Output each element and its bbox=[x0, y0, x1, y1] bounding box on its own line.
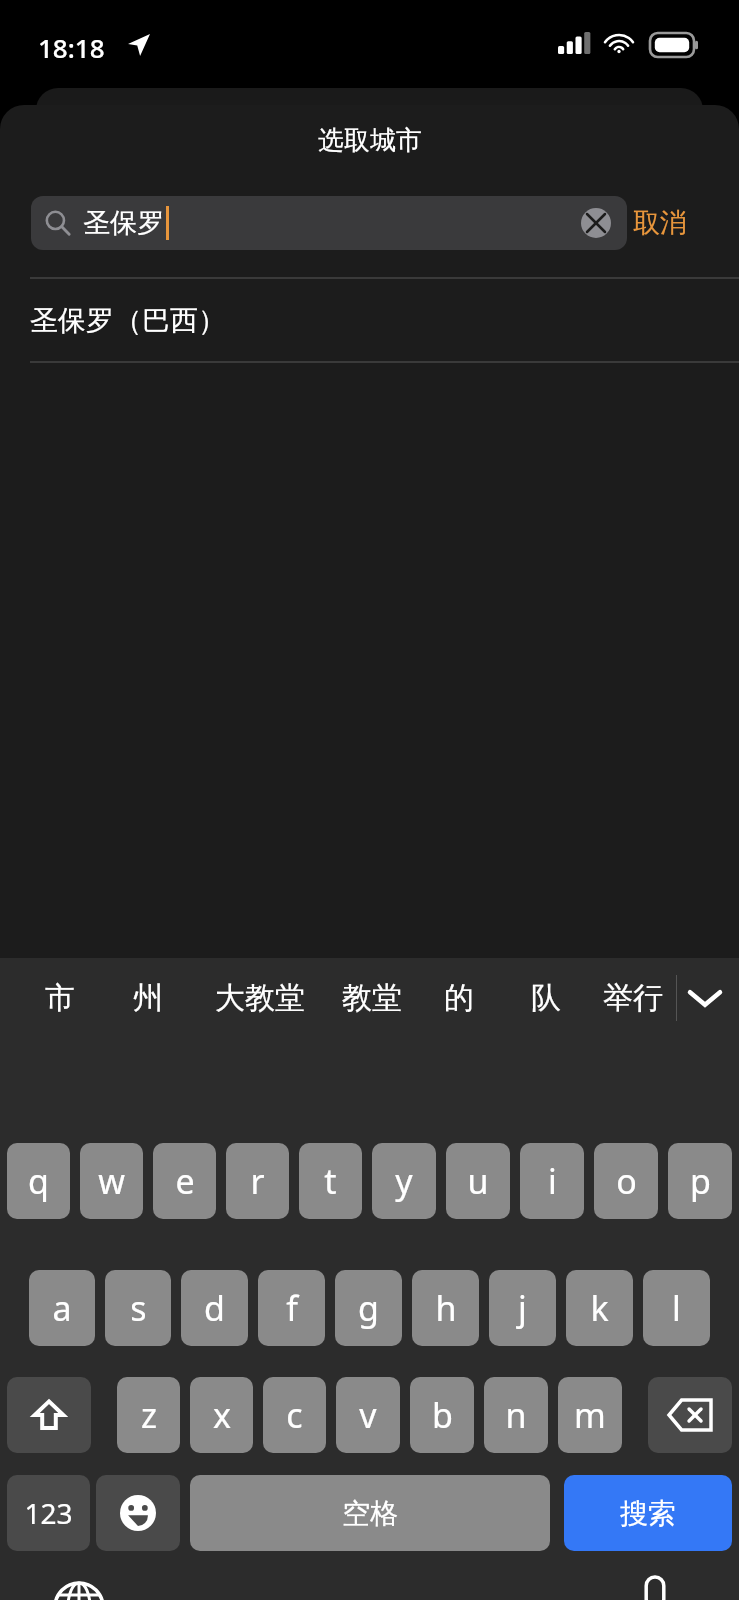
button[interactable]: r bbox=[226, 1143, 289, 1219]
button[interactable]: k bbox=[566, 1270, 633, 1346]
button[interactable]: 举行 bbox=[589, 958, 676, 1038]
button[interactable]: c bbox=[263, 1377, 326, 1453]
button[interactable]: g bbox=[335, 1270, 402, 1346]
staticText: s bbox=[130, 1285, 147, 1331]
button[interactable]: f bbox=[258, 1270, 325, 1346]
staticText: g bbox=[358, 1285, 379, 1331]
staticText: 取消 bbox=[633, 206, 687, 240]
staticText: b bbox=[432, 1392, 453, 1438]
button[interactable]: t bbox=[299, 1143, 362, 1219]
button[interactable]: a bbox=[29, 1270, 95, 1346]
staticText: 圣保罗（巴西） bbox=[30, 303, 226, 338]
staticText: 搜索 bbox=[620, 1496, 676, 1531]
button[interactable]: 教堂 bbox=[328, 958, 415, 1038]
staticText: e bbox=[175, 1158, 195, 1204]
staticText: h bbox=[435, 1285, 457, 1331]
staticText: z bbox=[141, 1392, 157, 1438]
button[interactable]: v bbox=[336, 1377, 400, 1453]
button[interactable]: Emoji bbox=[96, 1475, 180, 1551]
button[interactable]: 搜索 bbox=[564, 1475, 732, 1551]
button[interactable]: s bbox=[105, 1270, 171, 1346]
button[interactable]: e bbox=[153, 1143, 216, 1219]
button[interactable]: m bbox=[558, 1377, 622, 1453]
staticText: l bbox=[672, 1285, 681, 1331]
staticText: v bbox=[359, 1392, 377, 1438]
staticText: 州 bbox=[133, 979, 163, 1017]
button[interactable]: l bbox=[643, 1270, 710, 1346]
button[interactable]: y bbox=[372, 1143, 436, 1219]
staticText: x bbox=[213, 1392, 231, 1438]
staticText: 的 bbox=[444, 979, 474, 1017]
button[interactable]: x bbox=[190, 1377, 253, 1453]
button[interactable]: z bbox=[117, 1377, 180, 1453]
staticText: w bbox=[98, 1158, 125, 1204]
staticText: 举行 bbox=[603, 979, 663, 1017]
staticText: y bbox=[395, 1158, 413, 1204]
button[interactable]: Clear text bbox=[579, 206, 613, 240]
button[interactable]: b bbox=[410, 1377, 474, 1453]
button[interactable]: u bbox=[446, 1143, 510, 1219]
staticText: c bbox=[286, 1392, 303, 1438]
button[interactable]: q bbox=[7, 1143, 70, 1219]
staticText: f bbox=[286, 1285, 298, 1331]
button[interactable]: d bbox=[181, 1270, 248, 1346]
button[interactable]: Dictation bbox=[620, 1570, 690, 1600]
button[interactable]: j bbox=[489, 1270, 556, 1346]
staticText: k bbox=[590, 1285, 609, 1331]
staticText: a bbox=[52, 1285, 72, 1331]
staticText: i bbox=[548, 1158, 557, 1204]
staticText: 123 bbox=[24, 1494, 73, 1532]
button[interactable]: 取消 bbox=[633, 196, 687, 250]
staticText: 大教堂 bbox=[215, 979, 305, 1017]
staticText: 选取城市 bbox=[318, 124, 422, 157]
staticText: 18:18 bbox=[38, 30, 105, 65]
button[interactable]: 圣保罗 bbox=[31, 196, 627, 250]
staticText: 队 bbox=[531, 979, 561, 1017]
button[interactable]: i bbox=[520, 1143, 584, 1219]
staticText: t bbox=[324, 1158, 337, 1204]
button[interactable]: o bbox=[594, 1143, 658, 1219]
button[interactable]: 123 bbox=[7, 1475, 90, 1551]
staticText: p bbox=[690, 1158, 711, 1204]
button[interactable]: 空格 bbox=[190, 1475, 550, 1551]
staticText: m bbox=[574, 1392, 606, 1438]
button[interactable]: Expand candidates bbox=[677, 958, 733, 1038]
staticText: d bbox=[204, 1285, 225, 1331]
button[interactable]: Shift bbox=[7, 1377, 91, 1453]
staticText: o bbox=[616, 1158, 637, 1204]
button[interactable]: 圣保罗（巴西） bbox=[0, 279, 739, 361]
button[interactable]: w bbox=[80, 1143, 143, 1219]
button[interactable]: 大教堂 bbox=[192, 958, 328, 1038]
staticText: j bbox=[518, 1285, 527, 1331]
button[interactable]: p bbox=[668, 1143, 732, 1219]
staticText: u bbox=[467, 1158, 489, 1204]
button[interactable]: h bbox=[412, 1270, 479, 1346]
staticText: 市 bbox=[45, 979, 75, 1017]
staticText: n bbox=[505, 1392, 527, 1438]
button[interactable]: 的 bbox=[415, 958, 502, 1038]
button[interactable]: Switch language bbox=[48, 1576, 110, 1600]
button[interactable]: 州 bbox=[104, 958, 192, 1038]
staticText: q bbox=[28, 1158, 49, 1204]
staticText: 空格 bbox=[342, 1496, 398, 1531]
staticText: 教堂 bbox=[342, 979, 402, 1017]
button[interactable]: n bbox=[484, 1377, 548, 1453]
button[interactable]: Backspace bbox=[648, 1377, 732, 1453]
staticText: r bbox=[250, 1158, 265, 1204]
staticText: 圣保罗 bbox=[83, 206, 164, 240]
button[interactable]: 市 bbox=[16, 958, 104, 1038]
button[interactable]: 队 bbox=[502, 958, 589, 1038]
